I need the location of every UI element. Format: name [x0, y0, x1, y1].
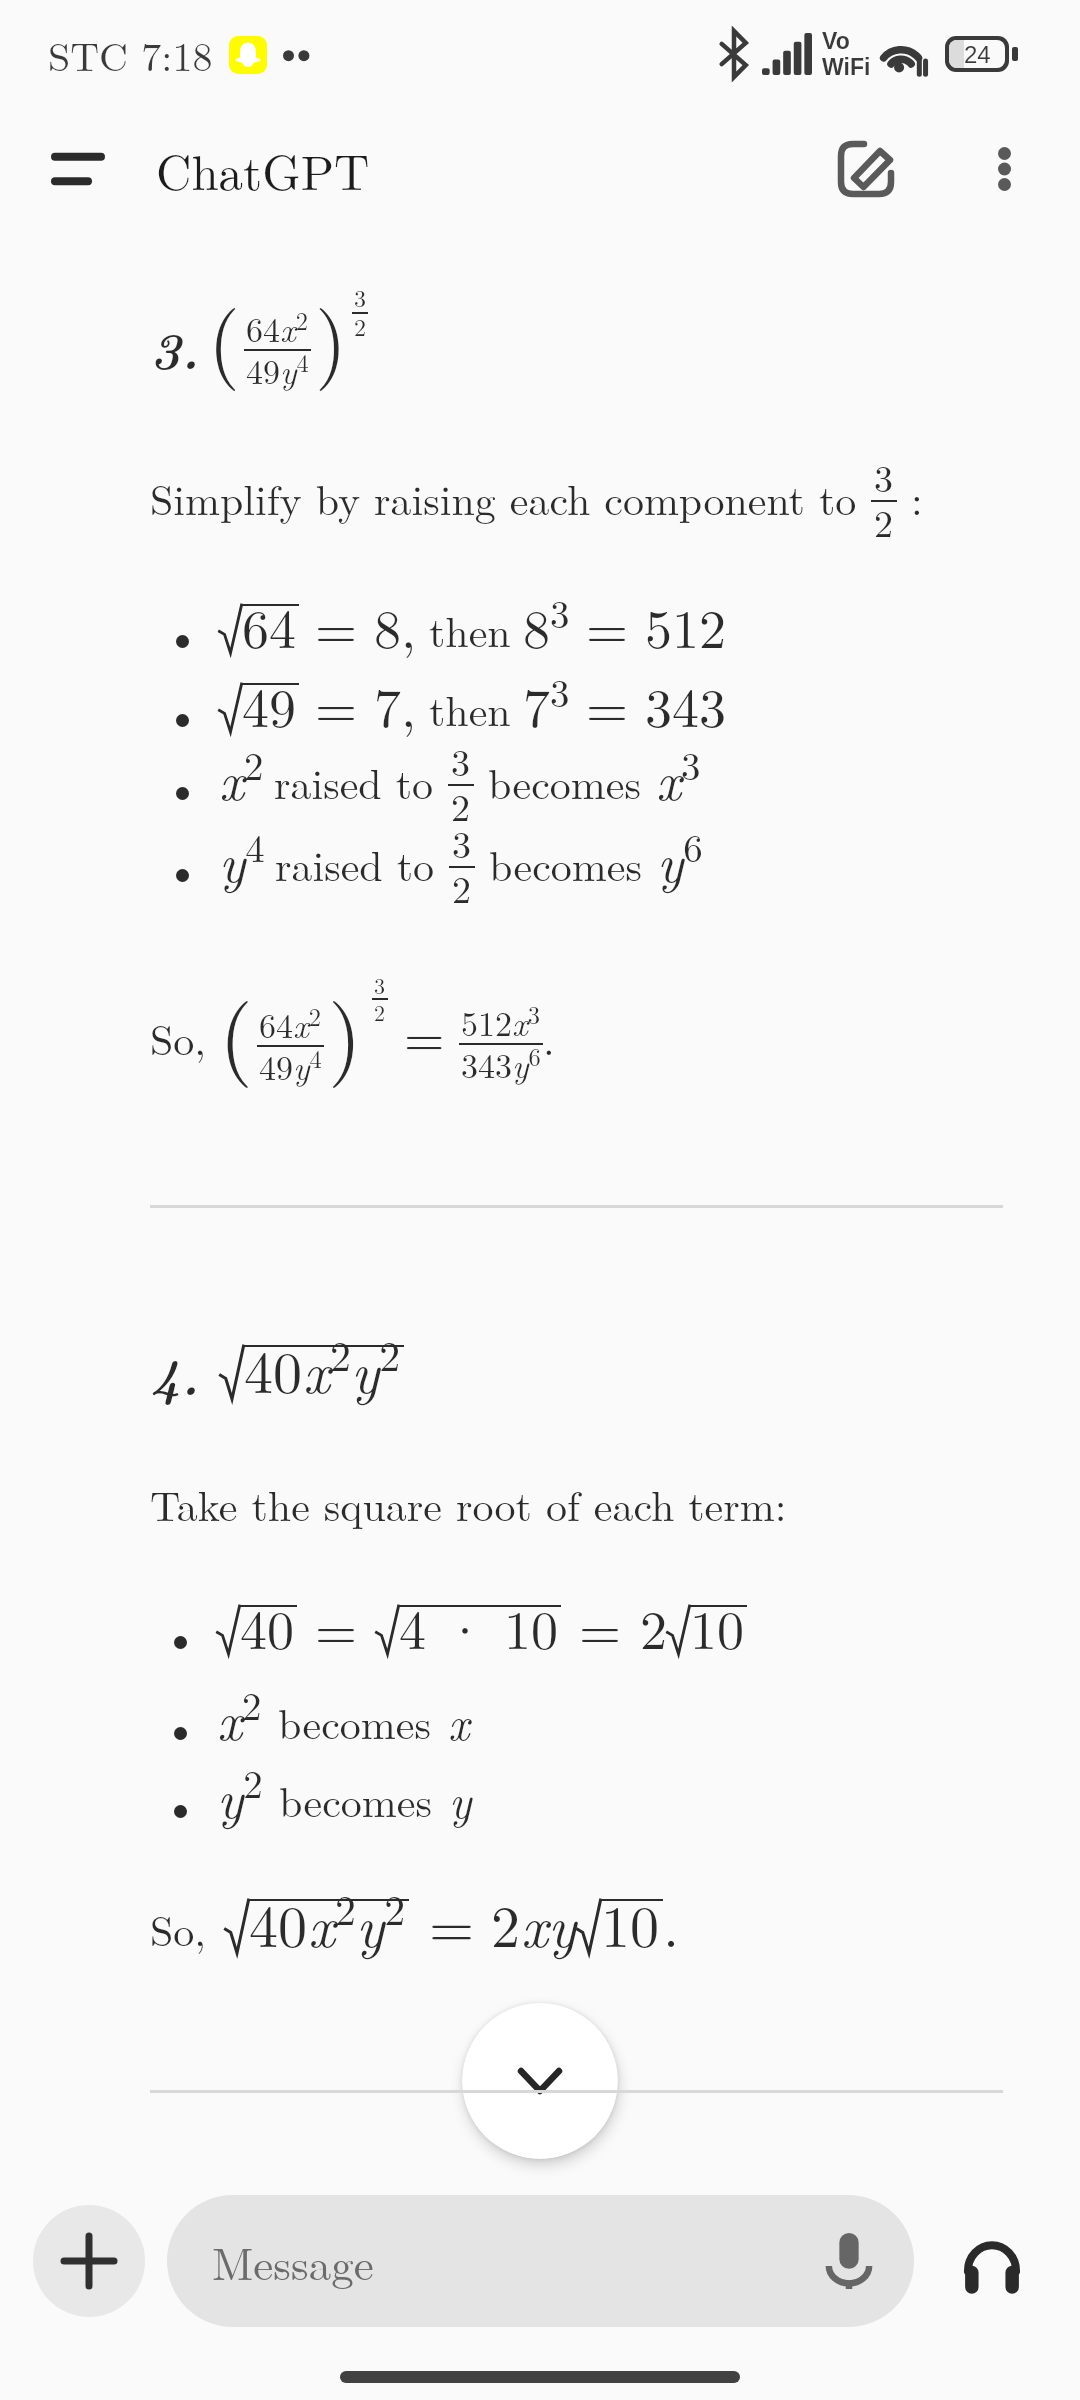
staticText: WiFi — [822, 54, 871, 80]
staticText: ) — [315, 278, 347, 394]
staticText: 2 — [374, 996, 386, 1027]
staticText: ( — [219, 968, 253, 1091]
staticText: then — [429, 600, 511, 660]
button[interactable]: Open menu — [30, 123, 122, 215]
button[interactable]: ChatGPT — [156, 135, 370, 204]
staticText: y6 — [657, 818, 703, 898]
staticText: Take the square root of each term: — [150, 1474, 787, 1534]
staticText: y4 — [293, 1040, 322, 1090]
staticText: = — [404, 997, 445, 1071]
staticText: x3 — [656, 736, 701, 816]
staticText: So, — [150, 1899, 207, 1959]
staticText: 2 — [491, 1882, 521, 1964]
button[interactable]: Scroll to bottom — [462, 2003, 618, 2159]
staticText: raised to — [275, 834, 435, 894]
staticText: 73 — [523, 663, 570, 743]
button[interactable]: More options — [968, 133, 1040, 205]
button[interactable]: Voice input — [812, 2224, 886, 2298]
staticText: = — [315, 666, 358, 743]
staticText: y4 — [219, 818, 265, 898]
staticText: : — [897, 468, 923, 528]
staticText: 40 — [244, 1328, 303, 1410]
staticText: Simplify by raising each component to — [150, 468, 871, 528]
staticText: 10 — [690, 1588, 744, 1665]
staticText: 64 — [242, 587, 296, 664]
staticText: 40 — [249, 1882, 308, 1964]
staticText: 3 — [374, 969, 386, 1000]
staticText: 7, — [374, 666, 417, 743]
staticText: STC 7:18 — [48, 26, 213, 83]
staticText: 2 — [452, 860, 472, 914]
staticText: x — [448, 1688, 470, 1753]
staticText: ( — [208, 278, 240, 394]
staticText: = — [586, 666, 629, 743]
staticText: 343 — [461, 1040, 512, 1088]
staticText: 512 — [645, 587, 726, 664]
button[interactable]: Add attachment — [33, 2205, 145, 2317]
staticText: 24 — [964, 41, 991, 68]
button[interactable]: Message — [167, 2195, 914, 2327]
staticText: x3 — [512, 996, 541, 1046]
staticText: = — [315, 587, 358, 664]
staticText: 3. — [150, 309, 200, 385]
staticText: raised to — [274, 752, 434, 812]
staticText: 49 — [259, 1042, 293, 1090]
staticText: becomes — [279, 1770, 433, 1830]
staticText: x2 — [293, 998, 322, 1048]
staticText: 10 — [601, 1882, 660, 1964]
staticText: 3 — [354, 280, 366, 314]
button[interactable]: New chat — [820, 123, 912, 215]
staticText: Vo — [822, 28, 850, 54]
staticText: 2 — [874, 494, 894, 548]
staticText: y4 — [280, 344, 309, 394]
staticText: 2 — [451, 778, 471, 832]
staticText: y6 — [512, 1038, 541, 1088]
staticText: 2 — [640, 1588, 667, 1665]
staticText: . — [663, 1882, 680, 1964]
staticText: 3 — [451, 733, 471, 787]
staticText: y — [449, 1766, 472, 1831]
staticText: becomes — [488, 752, 642, 812]
staticText: = — [586, 587, 629, 664]
staticText: = — [315, 1588, 358, 1665]
staticText: 49 — [242, 666, 296, 743]
staticText: x2 — [217, 1676, 262, 1756]
staticText: becomes — [278, 1692, 432, 1752]
staticText: 83 — [523, 584, 570, 664]
staticText: = — [579, 1588, 622, 1665]
staticText: 8, — [374, 587, 417, 664]
staticText: So, — [150, 1008, 207, 1068]
button[interactable]: Voice mode — [946, 2215, 1038, 2307]
staticText: y2 — [351, 1324, 401, 1410]
staticText: then — [429, 679, 511, 739]
staticText: ) — [328, 968, 362, 1091]
staticText: 343 — [645, 666, 726, 743]
staticText: x2 — [303, 1324, 351, 1410]
staticText: 40 — [240, 1588, 294, 1665]
staticText: Message — [212, 2229, 374, 2293]
staticText: 64 — [259, 1000, 293, 1048]
staticText: x2 — [219, 736, 264, 816]
staticText: y2 — [217, 1754, 263, 1834]
staticText: 512 — [461, 998, 512, 1046]
staticText: 3 — [874, 449, 894, 503]
staticText: xy — [521, 1882, 577, 1964]
staticText: 4 · 10 — [399, 1588, 558, 1665]
staticText: 49 — [246, 346, 280, 394]
staticText: 3 — [452, 815, 472, 869]
staticText: x2 — [280, 302, 309, 352]
staticText: 2 — [354, 309, 366, 343]
staticText: y2 — [356, 1878, 406, 1964]
staticText: x2 — [308, 1878, 356, 1964]
staticText: 4. — [150, 1335, 200, 1411]
staticText: = — [429, 1882, 475, 1964]
staticText: becomes — [489, 834, 643, 894]
staticText: 64 — [246, 304, 280, 352]
staticText: . — [543, 1008, 555, 1068]
